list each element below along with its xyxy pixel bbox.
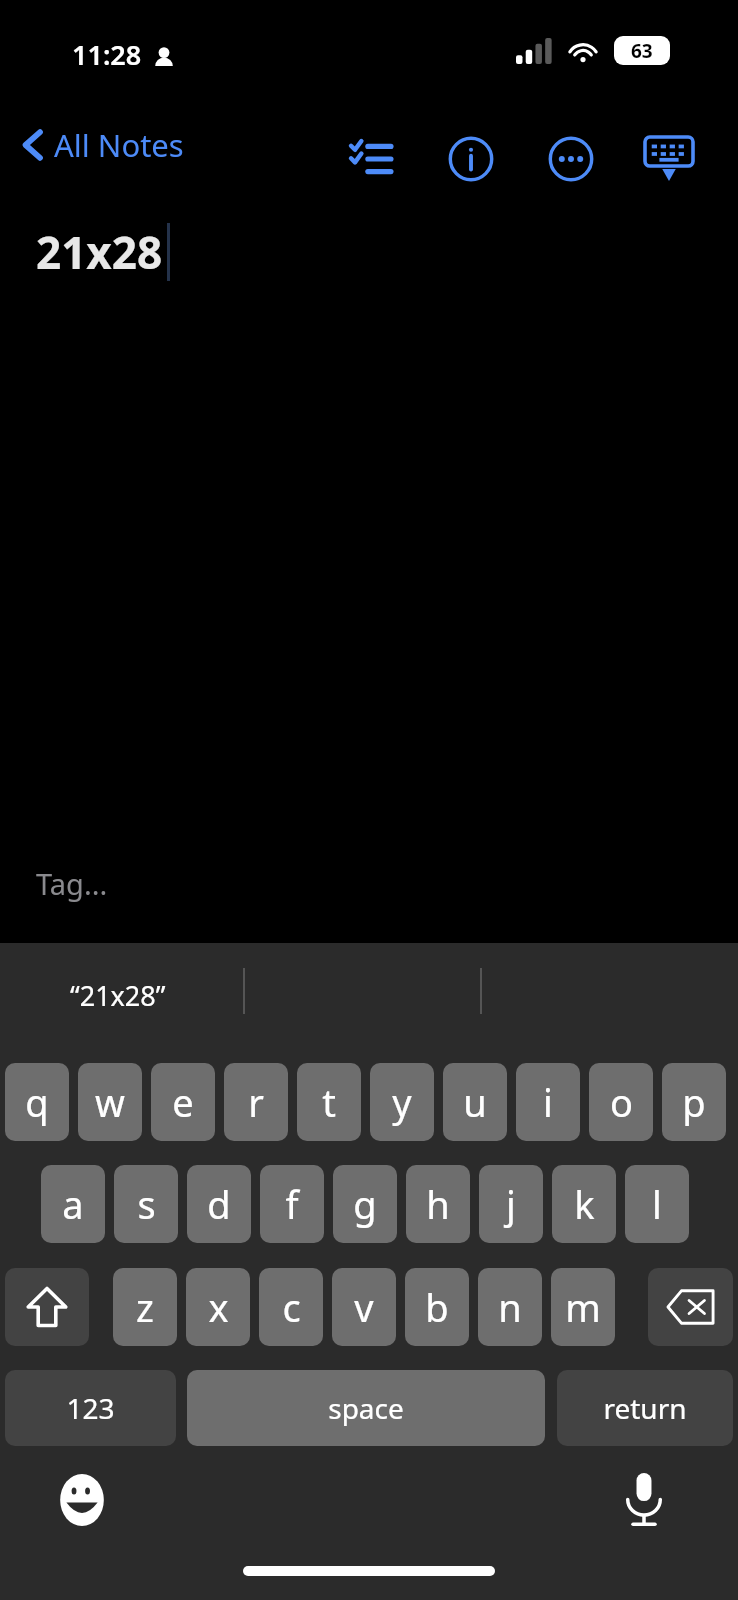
staticText: m [565,1281,601,1333]
button[interactable]: g [333,1165,397,1243]
staticText: 21x28 [36,222,163,282]
button[interactable]: b [405,1268,469,1346]
button[interactable]: space [187,1370,545,1446]
staticText: return [603,1389,687,1427]
button[interactable]: l [625,1165,689,1243]
staticText: p [682,1076,706,1128]
button[interactable]: x [186,1268,250,1346]
button[interactable]: z [113,1268,177,1346]
button[interactable]: m [551,1268,615,1346]
staticText: Tag... [36,864,108,903]
staticText: q [25,1076,49,1128]
staticText: v [354,1281,374,1333]
staticText: h [426,1178,450,1230]
staticText: w [95,1076,125,1128]
staticText: u [463,1076,487,1128]
staticText: 63 [631,38,653,64]
button[interactable]: Dictation [612,1468,676,1532]
staticText: c [282,1281,301,1333]
button[interactable]: p [662,1063,726,1141]
button[interactable]: j [479,1165,543,1243]
staticText: y [392,1076,412,1128]
staticText: All Notes [54,124,184,166]
staticText: l [652,1178,662,1230]
staticText: space [328,1389,404,1427]
button[interactable]: e [151,1063,215,1141]
button[interactable]: return [557,1370,733,1446]
staticText: i [543,1076,553,1128]
button[interactable]: o [589,1063,653,1141]
button[interactable]: Checklist [340,128,402,190]
button[interactable]: Emoji [50,1468,114,1532]
button[interactable]: t [297,1063,361,1141]
staticText: e [172,1076,194,1128]
staticText: f [285,1178,299,1230]
staticText: z [136,1281,154,1333]
button[interactable]: r [224,1063,288,1141]
staticText: g [353,1178,377,1230]
staticText: o [610,1076,633,1128]
staticText: x [208,1281,229,1333]
staticText: b [425,1281,449,1333]
button[interactable]: v [332,1268,396,1346]
staticText: d [207,1178,231,1230]
staticText: t [322,1076,336,1128]
staticText: 11:28 [72,36,142,73]
staticText: k [574,1178,595,1230]
button[interactable]: k [552,1165,616,1243]
button[interactable]: h [406,1165,470,1243]
staticText: r [248,1076,264,1128]
button[interactable]: f [260,1165,324,1243]
staticText: a [62,1178,84,1230]
button[interactable]: d [187,1165,251,1243]
button[interactable]: w [78,1063,142,1141]
button[interactable]: All Notes [14,118,192,172]
button[interactable]: “21x28” [66,973,170,1018]
button[interactable]: u [443,1063,507,1141]
button[interactable]: Shift [5,1268,89,1346]
button[interactable]: a [41,1165,105,1243]
staticText: s [137,1178,156,1230]
button[interactable]: n [478,1268,542,1346]
button[interactable]: Hide keyboard [638,128,700,190]
button[interactable]: Backspace [648,1268,733,1346]
button[interactable]: c [259,1268,323,1346]
button[interactable]: q [5,1063,69,1141]
button[interactable]: i [516,1063,580,1141]
staticText: j [506,1178,516,1230]
button[interactable]: Info [440,128,502,190]
button[interactable]: s [114,1165,178,1243]
button[interactable]: More options [540,128,602,190]
button[interactable]: y [370,1063,434,1141]
staticText: 123 [66,1389,115,1427]
staticText: n [498,1281,522,1333]
button[interactable]: 123 [5,1370,176,1446]
